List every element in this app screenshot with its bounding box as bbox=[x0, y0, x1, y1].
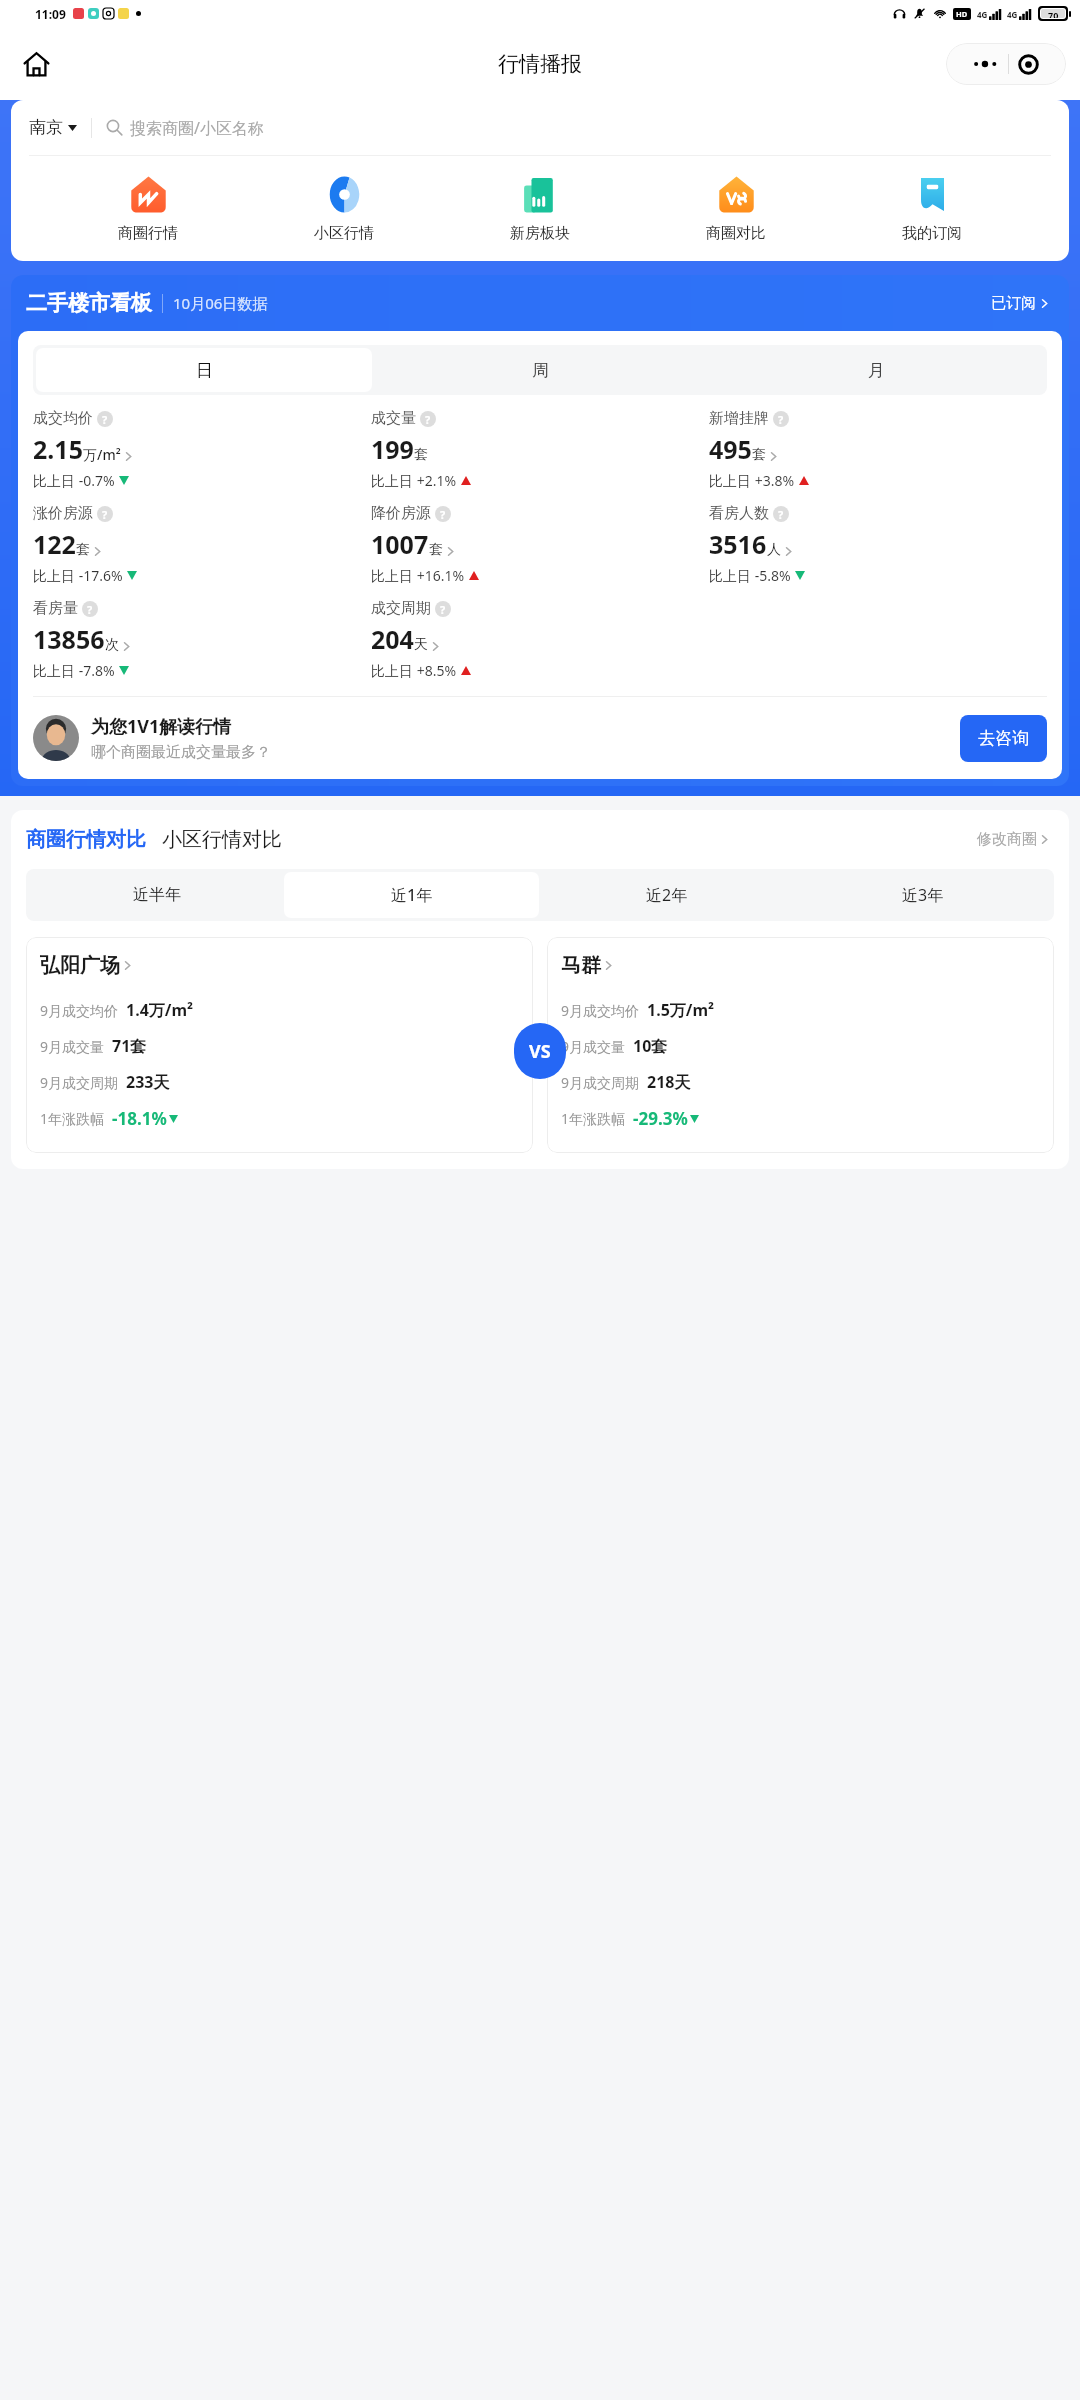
staticText: HD bbox=[956, 9, 968, 19]
staticText: 我的订阅 bbox=[902, 224, 962, 243]
staticText: 2.15 bbox=[33, 432, 83, 466]
staticText: 套 bbox=[414, 446, 428, 464]
button[interactable]: 商圈行情对比 bbox=[26, 827, 146, 852]
staticText: 13856 bbox=[33, 622, 105, 656]
button[interactable]: 小区行情对比 bbox=[162, 827, 282, 852]
staticText: ? bbox=[87, 602, 93, 617]
staticText: ? bbox=[425, 412, 431, 427]
staticText: 次 bbox=[105, 636, 119, 654]
button[interactable]: 成交均价 bbox=[33, 409, 138, 490]
staticText: 为您1V1解读行情 bbox=[91, 714, 232, 739]
staticText: 日 bbox=[196, 360, 213, 381]
staticText: 1007 bbox=[371, 527, 429, 561]
staticText: 9月成交周期 bbox=[561, 1073, 640, 1092]
staticText: 1.5万/m² bbox=[647, 999, 715, 1021]
staticText: -18.1% bbox=[112, 1107, 167, 1130]
button[interactable]: 月 bbox=[708, 348, 1044, 392]
staticText: 4G bbox=[977, 9, 988, 20]
button[interactable]: 修改商圈 bbox=[973, 826, 1054, 853]
staticText: 成交均价 bbox=[33, 409, 93, 428]
staticText: 近2年 bbox=[646, 884, 688, 906]
button[interactable]: Mini program menu bbox=[946, 43, 1066, 85]
button[interactable]: 去咨询 bbox=[960, 715, 1047, 762]
staticText: -29.3% bbox=[633, 1107, 688, 1130]
staticText: 月 bbox=[868, 360, 885, 381]
staticText: 套 bbox=[752, 446, 766, 464]
button[interactable]: 南京 bbox=[29, 100, 1051, 155]
button[interactable]: 马群 bbox=[547, 937, 1054, 1153]
staticText: VS bbox=[529, 1039, 551, 1064]
staticText: ? bbox=[440, 507, 446, 522]
staticText: 成交周期 bbox=[371, 599, 431, 618]
staticText: 商圈对比 bbox=[706, 224, 766, 243]
staticText: 周 bbox=[532, 360, 549, 381]
button[interactable]: 小区行情 bbox=[285, 172, 403, 245]
staticText: 万/m² bbox=[83, 445, 121, 464]
button[interactable]: 涨价房源 bbox=[33, 504, 141, 585]
staticText: 哪个商圈最近成交量最多？ bbox=[91, 743, 271, 762]
button[interactable]: 近1年 bbox=[284, 872, 539, 918]
staticText: ? bbox=[102, 507, 108, 522]
staticText: 71套 bbox=[112, 1035, 147, 1057]
staticText: 小区行情 bbox=[314, 224, 374, 243]
staticText: 495 bbox=[709, 432, 752, 466]
staticText: 10套 bbox=[633, 1035, 668, 1057]
staticText: 比上日 +16.1% bbox=[371, 566, 465, 585]
button[interactable]: 成交量 bbox=[371, 409, 475, 490]
button[interactable]: 周 bbox=[372, 348, 708, 392]
button[interactable]: 近半年 bbox=[29, 872, 284, 918]
staticText: 新房板块 bbox=[510, 224, 570, 243]
staticText: 搜索商圈/小区名称 bbox=[130, 117, 264, 139]
button[interactable]: Home bbox=[14, 42, 58, 86]
staticText: 成交量 bbox=[371, 409, 416, 428]
staticText: 199 bbox=[371, 432, 414, 466]
staticText: 涨价房源 bbox=[33, 504, 93, 523]
staticText: 比上日 +8.5% bbox=[371, 661, 457, 680]
staticText: 天 bbox=[414, 636, 428, 654]
button[interactable]: 降价房源 bbox=[371, 504, 483, 585]
staticText: 1.4万/m² bbox=[126, 999, 194, 1021]
button[interactable]: 看房量 bbox=[33, 599, 136, 680]
staticText: 70 bbox=[1048, 9, 1059, 18]
staticText: 看房人数 bbox=[709, 504, 769, 523]
button[interactable]: 已订阅 bbox=[987, 290, 1054, 317]
staticText: 商圈行情 bbox=[118, 224, 178, 243]
staticText: 南京 bbox=[29, 117, 63, 138]
button[interactable]: 商圈对比 bbox=[677, 172, 795, 245]
button[interactable]: 看房人数 bbox=[709, 504, 809, 585]
staticText: 去咨询 bbox=[978, 728, 1029, 749]
staticText: 看房量 bbox=[33, 599, 78, 618]
staticText: 9月成交均价 bbox=[40, 1001, 119, 1020]
staticText: 二手楼市看板 bbox=[26, 290, 152, 316]
button[interactable]: 为您1V1解读行情 bbox=[33, 697, 1047, 779]
staticText: 9月成交周期 bbox=[40, 1073, 119, 1092]
staticText: 218天 bbox=[647, 1071, 691, 1093]
staticText: 比上日 -5.8% bbox=[709, 566, 791, 585]
staticText: 马群 bbox=[561, 953, 601, 978]
button[interactable]: 日 bbox=[36, 348, 372, 392]
staticText: 1年涨跌幅 bbox=[561, 1109, 626, 1128]
button[interactable]: 商圈行情 bbox=[89, 172, 207, 245]
staticText: 新增挂牌 bbox=[709, 409, 769, 428]
staticText: 修改商圈 bbox=[977, 830, 1037, 849]
staticText: 近半年 bbox=[133, 885, 181, 905]
button[interactable]: 成交周期 bbox=[371, 599, 475, 680]
staticText: ? bbox=[102, 412, 108, 427]
staticText: ? bbox=[778, 507, 784, 522]
staticText: 近3年 bbox=[902, 884, 944, 906]
staticText: 已订阅 bbox=[991, 294, 1036, 313]
button[interactable]: 我的订阅 bbox=[873, 172, 991, 245]
staticText: 行情播报 bbox=[498, 51, 582, 77]
staticText: 比上日 +3.8% bbox=[709, 471, 795, 490]
staticText: 4G bbox=[1007, 9, 1018, 20]
button[interactable]: 近2年 bbox=[539, 872, 795, 918]
staticText: ? bbox=[778, 412, 784, 427]
button[interactable]: 新房板块 bbox=[481, 172, 599, 245]
staticText: 近1年 bbox=[391, 884, 433, 906]
staticText: 9月成交量 bbox=[40, 1037, 105, 1056]
staticText: 3516 bbox=[709, 527, 767, 561]
staticText: 比上日 -17.6% bbox=[33, 566, 123, 585]
button[interactable]: 近3年 bbox=[795, 872, 1051, 918]
button[interactable]: 弘阳广场 bbox=[26, 937, 533, 1153]
button[interactable]: 新增挂牌 bbox=[709, 409, 813, 490]
